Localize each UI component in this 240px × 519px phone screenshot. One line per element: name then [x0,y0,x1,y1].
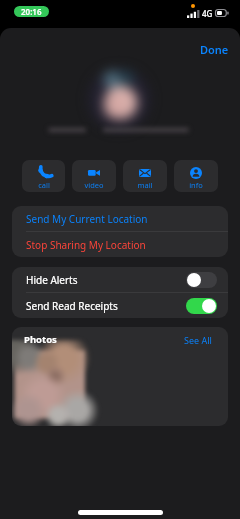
staticText: See All [184,334,212,346]
staticText: Stop Sharing My Location [26,238,146,252]
button[interactable]: Enabled [186,298,217,314]
staticText: Send My Current Location [26,212,148,226]
button[interactable]: Hide Alerts [12,267,228,292]
button[interactable]: See All [184,334,212,346]
button[interactable]: Stop Sharing My Location [12,232,228,257]
button[interactable]: call [22,160,65,192]
staticText: 4G [202,8,213,19]
button[interactable]: Send My Current Location [12,206,228,231]
staticText: video [84,180,104,190]
staticText: Photos [24,333,57,346]
button[interactable]: Recording indicator, 20:16 [14,6,49,17]
button[interactable]: Photo [12,340,111,426]
staticText: 20:16 [21,6,42,17]
button[interactable]: mail [123,160,167,192]
staticText: Done [200,42,229,57]
staticText: call [38,180,50,190]
button[interactable]: Disabled [186,272,217,288]
staticText: mail [137,180,153,190]
staticText: Hide Alerts [26,273,78,287]
staticText: info [189,180,203,190]
button[interactable]: video [72,160,116,192]
button[interactable]: info [174,160,218,192]
button[interactable]: Done [189,38,240,61]
staticText: Send Read Receipts [26,299,118,313]
button[interactable]: Send Read Receipts [12,293,228,318]
